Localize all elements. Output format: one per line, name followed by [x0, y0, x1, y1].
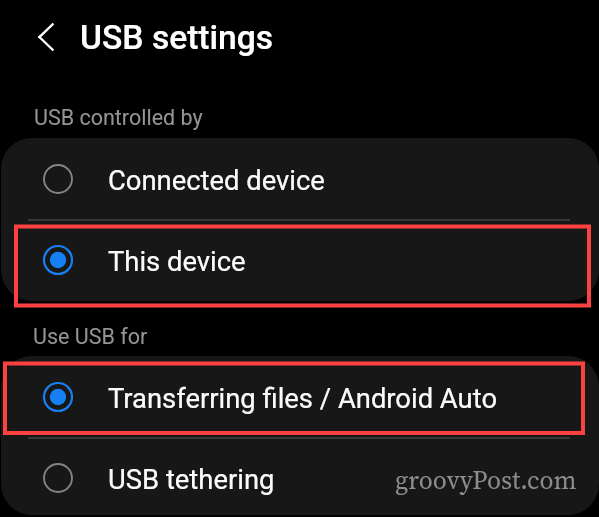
staticText: USB controlled by — [34, 105, 203, 130]
button[interactable]: Navigate back — [24, 15, 68, 59]
staticText: groovyPost.com — [395, 463, 577, 498]
button[interactable]: Transferring files / Android Auto — [1, 356, 599, 437]
button[interactable]: This device — [1, 219, 599, 300]
button[interactable]: USB tethering — [1, 437, 599, 515]
staticText: USB settings — [80, 18, 274, 57]
staticText: Transferring files / Android Auto — [108, 383, 498, 415]
staticText: This device — [108, 246, 246, 278]
staticText: Use USB for — [33, 324, 148, 349]
staticText: USB tethering — [108, 464, 275, 496]
button[interactable]: Connected device — [1, 138, 599, 219]
staticText: Connected device — [108, 165, 325, 197]
